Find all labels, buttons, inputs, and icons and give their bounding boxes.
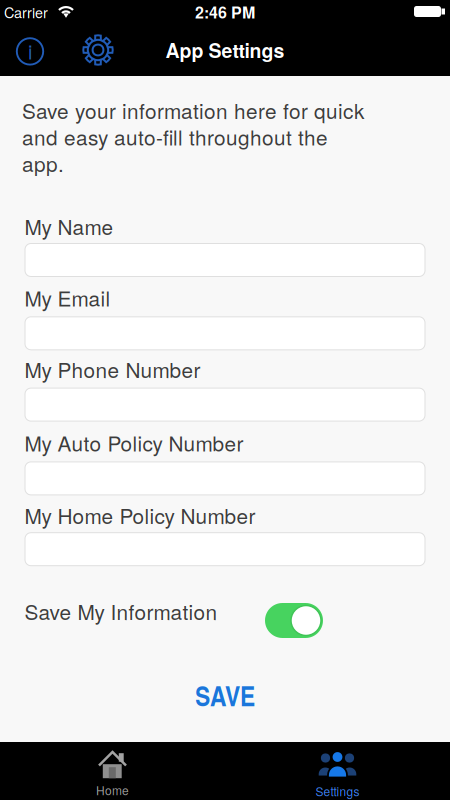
staticText: My Home Policy Number: [24, 500, 255, 530]
staticText: i: [28, 37, 32, 65]
staticText: My Name: [24, 211, 113, 241]
staticText: and easy auto-fill throughout the: [22, 122, 328, 151]
button[interactable]: Save My Information: [265, 603, 323, 638]
staticText: Save My Information: [24, 596, 217, 626]
staticText: Carrier: [4, 2, 48, 22]
button[interactable]: Settings: [82, 34, 114, 66]
staticText: Settings: [315, 782, 359, 800]
button[interactable]: SAVE: [195, 675, 255, 715]
staticText: My Auto Policy Number: [24, 428, 243, 457]
button[interactable]: Settings: [225, 742, 450, 800]
button[interactable]: Info: [15, 36, 45, 66]
staticText: app.: [22, 148, 64, 178]
staticText: My Email: [24, 283, 110, 312]
staticText: Home: [96, 781, 129, 799]
staticText: 2:46 PM: [195, 0, 255, 23]
staticText: My Phone Number: [24, 354, 200, 384]
staticText: App Settings: [165, 36, 284, 64]
button[interactable]: Home: [0, 742, 225, 800]
staticText: SAVE: [195, 675, 255, 715]
staticText: Save your information here for quick: [22, 95, 364, 125]
